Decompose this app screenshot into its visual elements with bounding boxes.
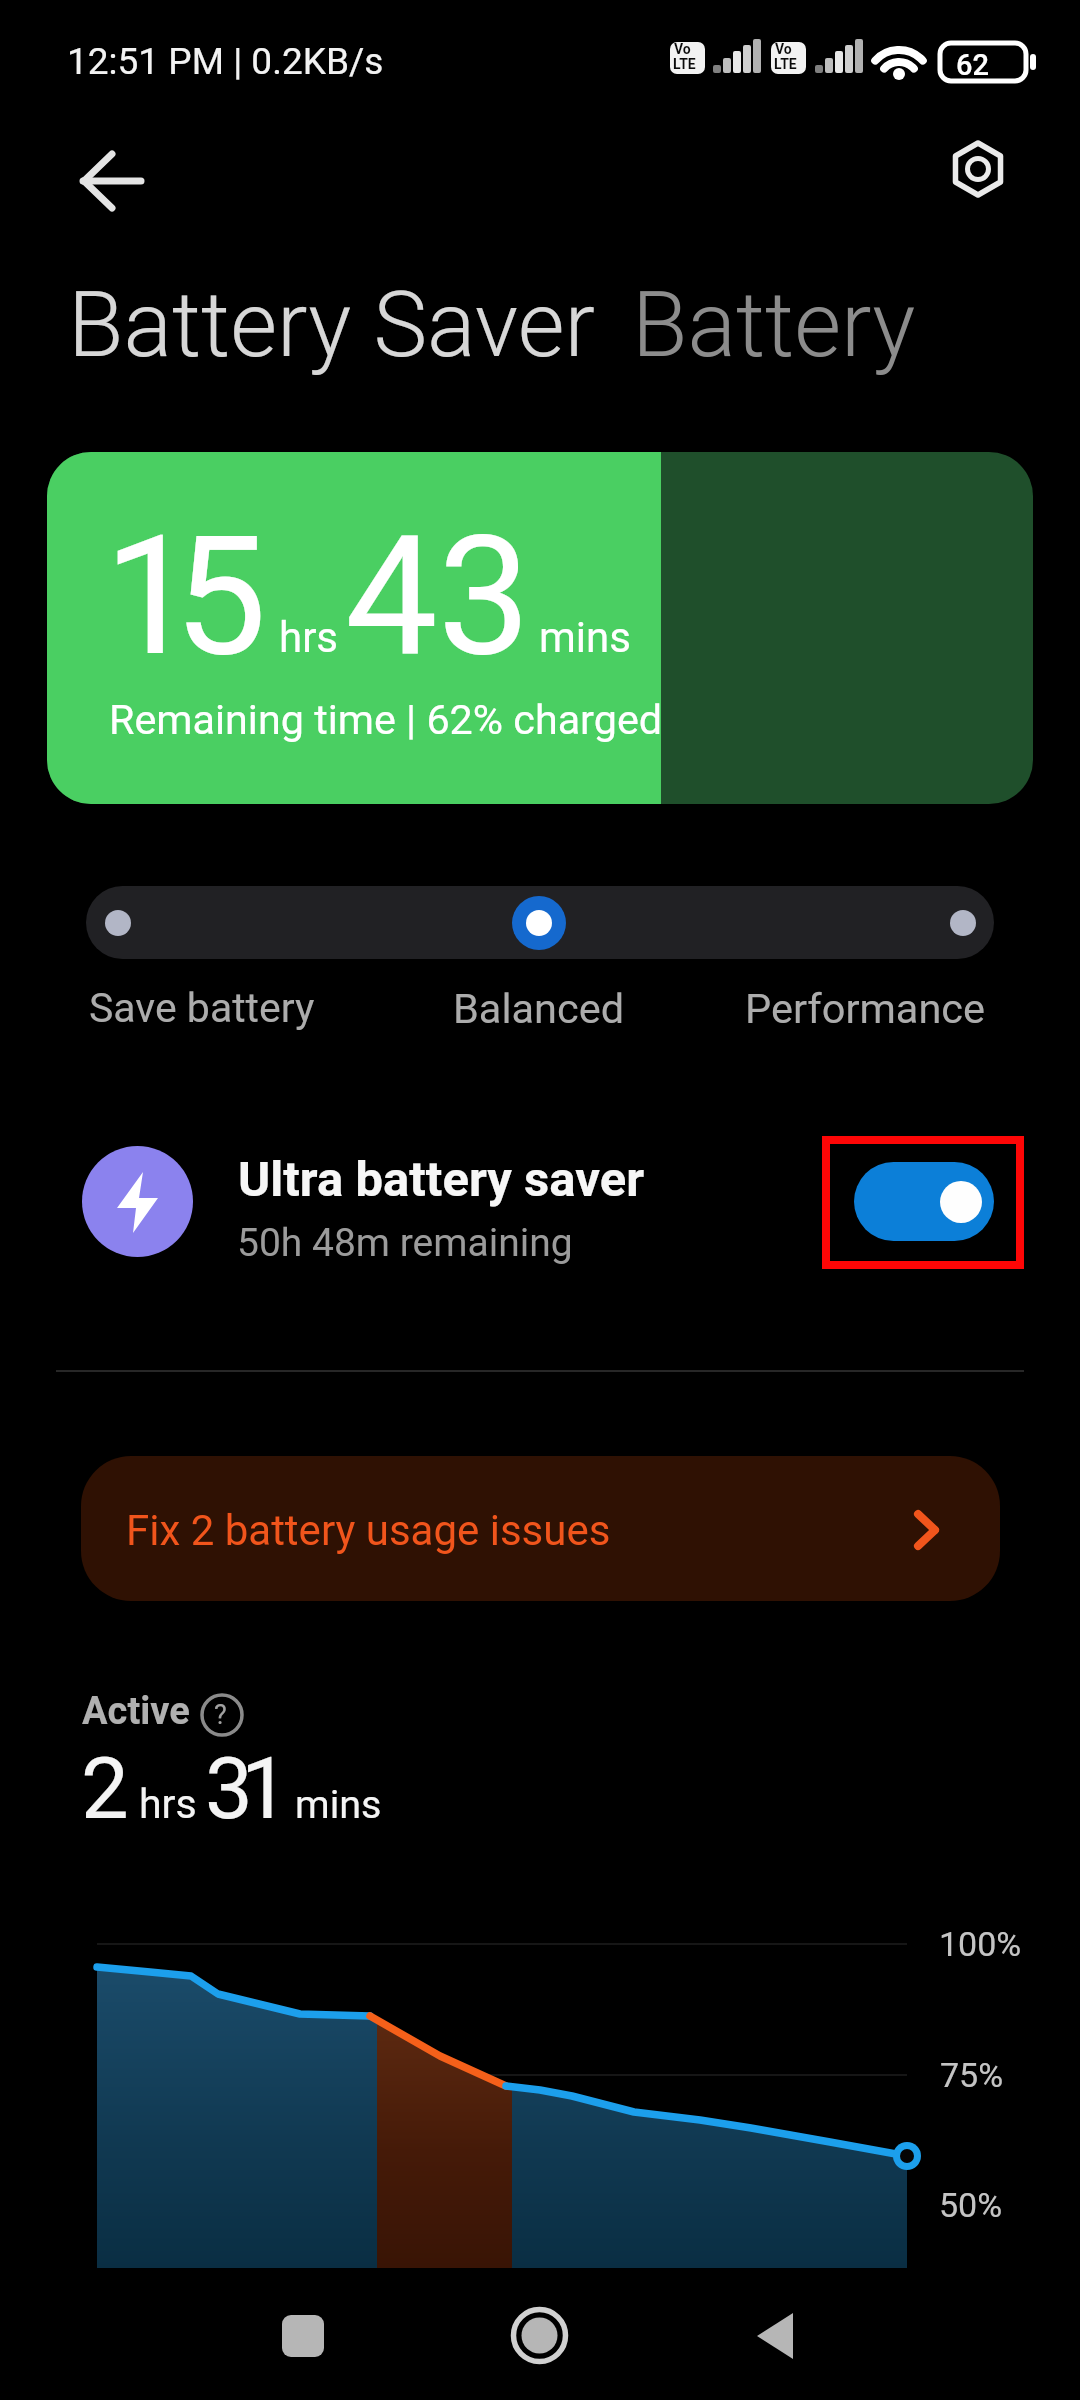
button[interactable]: Back (732, 2292, 819, 2379)
button[interactable]: Battery (0, 250, 284, 356)
staticText: 43 (345, 500, 531, 693)
staticText: 2 (81, 1739, 129, 1839)
staticText: 3 (205, 1739, 253, 1839)
staticText: Remaining time | 62% charged (109, 696, 663, 744)
staticText: 12:51 PM | 0.2KB/s (67, 40, 384, 83)
button[interactable]: Ultra battery saver (0, 1120, 1080, 1290)
button[interactable]: Fix 2 battery usage issues (81, 1456, 1000, 1601)
button[interactable]: Ultra battery saver toggle (854, 1162, 994, 1241)
staticText: 1 (104, 500, 197, 693)
staticText: 100% (939, 1924, 1022, 1964)
button[interactable]: Balanced (0, 960, 172, 1009)
staticText: Vo (674, 42, 691, 57)
button[interactable]: Performance (0, 960, 241, 1009)
staticText: Vo (775, 42, 792, 57)
staticText: 75% (940, 2055, 1004, 2095)
staticText: hrs (279, 613, 339, 662)
button[interactable]: Help (198, 1691, 246, 1739)
button[interactable]: Settings (930, 122, 1026, 218)
button[interactable]: Recents (259, 2292, 346, 2379)
button[interactable]: Home (496, 2292, 583, 2379)
button[interactable]: Performance mode slider (86, 886, 994, 959)
button[interactable]: Save battery (0, 960, 226, 1008)
button[interactable]: Battery Saver (0, 250, 528, 356)
staticText: 1 (241, 1739, 289, 1839)
staticText: 50% (939, 2185, 1003, 2225)
staticText: hrs (139, 1780, 197, 1828)
staticText: Fix 2 battery usage issues (126, 1506, 611, 1555)
staticText: 5 (174, 500, 267, 693)
staticText: mins (295, 1781, 382, 1827)
staticText: ? (214, 1699, 227, 1731)
staticText: LTE (673, 56, 696, 72)
staticText: mins (539, 613, 631, 662)
staticText: 50h 48m remaining (237, 1220, 573, 1266)
staticText: 62 (956, 48, 989, 82)
staticText: LTE (774, 56, 797, 72)
button[interactable]: Back (56, 124, 152, 220)
button[interactable]: 1 (47, 452, 1033, 804)
staticText: Ultra battery saver (238, 1151, 645, 1208)
staticText: Active (82, 1689, 190, 1734)
